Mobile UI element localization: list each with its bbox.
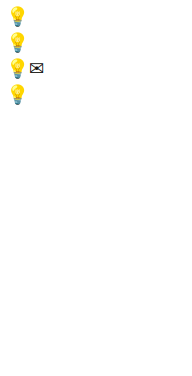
staticText: 💡 <box>6 32 29 54</box>
staticText: 💡✉ <box>6 58 45 80</box>
staticText: 💡 <box>6 84 29 105</box>
staticText: 💡 <box>6 6 29 28</box>
